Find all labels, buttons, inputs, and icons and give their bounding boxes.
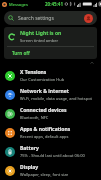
staticText: Bluetooth, NFC bbox=[20, 115, 49, 120]
staticText: 20:45:41 bbox=[45, 1, 63, 7]
button[interactable]: Network & internet bbox=[0, 85, 101, 104]
staticText: Wallpaper, sleep, font size bbox=[20, 172, 69, 177]
button[interactable]: Search settings bbox=[4, 11, 97, 25]
staticText: Night Light is on bbox=[20, 30, 62, 37]
staticText: Wi-Fi, mobile, data usage, and hotspot bbox=[20, 96, 92, 101]
staticText: Turn off bbox=[12, 50, 30, 56]
staticText: Recent apps, default apps bbox=[20, 134, 69, 139]
button[interactable]: Night Light is on bbox=[4, 27, 97, 46]
staticText: Apps & notifications bbox=[20, 126, 71, 133]
button[interactable]: Turn off bbox=[4, 47, 97, 59]
staticText: 75% - Should last until about 06:00 bbox=[20, 153, 85, 158]
button[interactable]: Account bbox=[84, 14, 93, 23]
button[interactable]: X Tensions bbox=[0, 66, 101, 85]
staticText: Our Customization Hub bbox=[20, 77, 65, 82]
button[interactable]: Apps & notifications bbox=[0, 123, 101, 142]
staticText: Display bbox=[20, 164, 39, 171]
staticText: Battery bbox=[20, 145, 39, 152]
staticText: Connected devices bbox=[20, 107, 67, 114]
button[interactable]: Connected devices bbox=[0, 104, 101, 123]
staticText: Screen tinted amber bbox=[20, 38, 59, 43]
staticText: X Tensions bbox=[20, 69, 47, 76]
button[interactable]: Display bbox=[0, 161, 101, 180]
staticText: Messages bbox=[9, 2, 28, 7]
button[interactable]: Battery bbox=[0, 142, 101, 161]
button[interactable]: Collapse bbox=[89, 60, 95, 66]
staticText: Search settings bbox=[18, 15, 54, 22]
staticText: Network & internet bbox=[20, 88, 69, 95]
